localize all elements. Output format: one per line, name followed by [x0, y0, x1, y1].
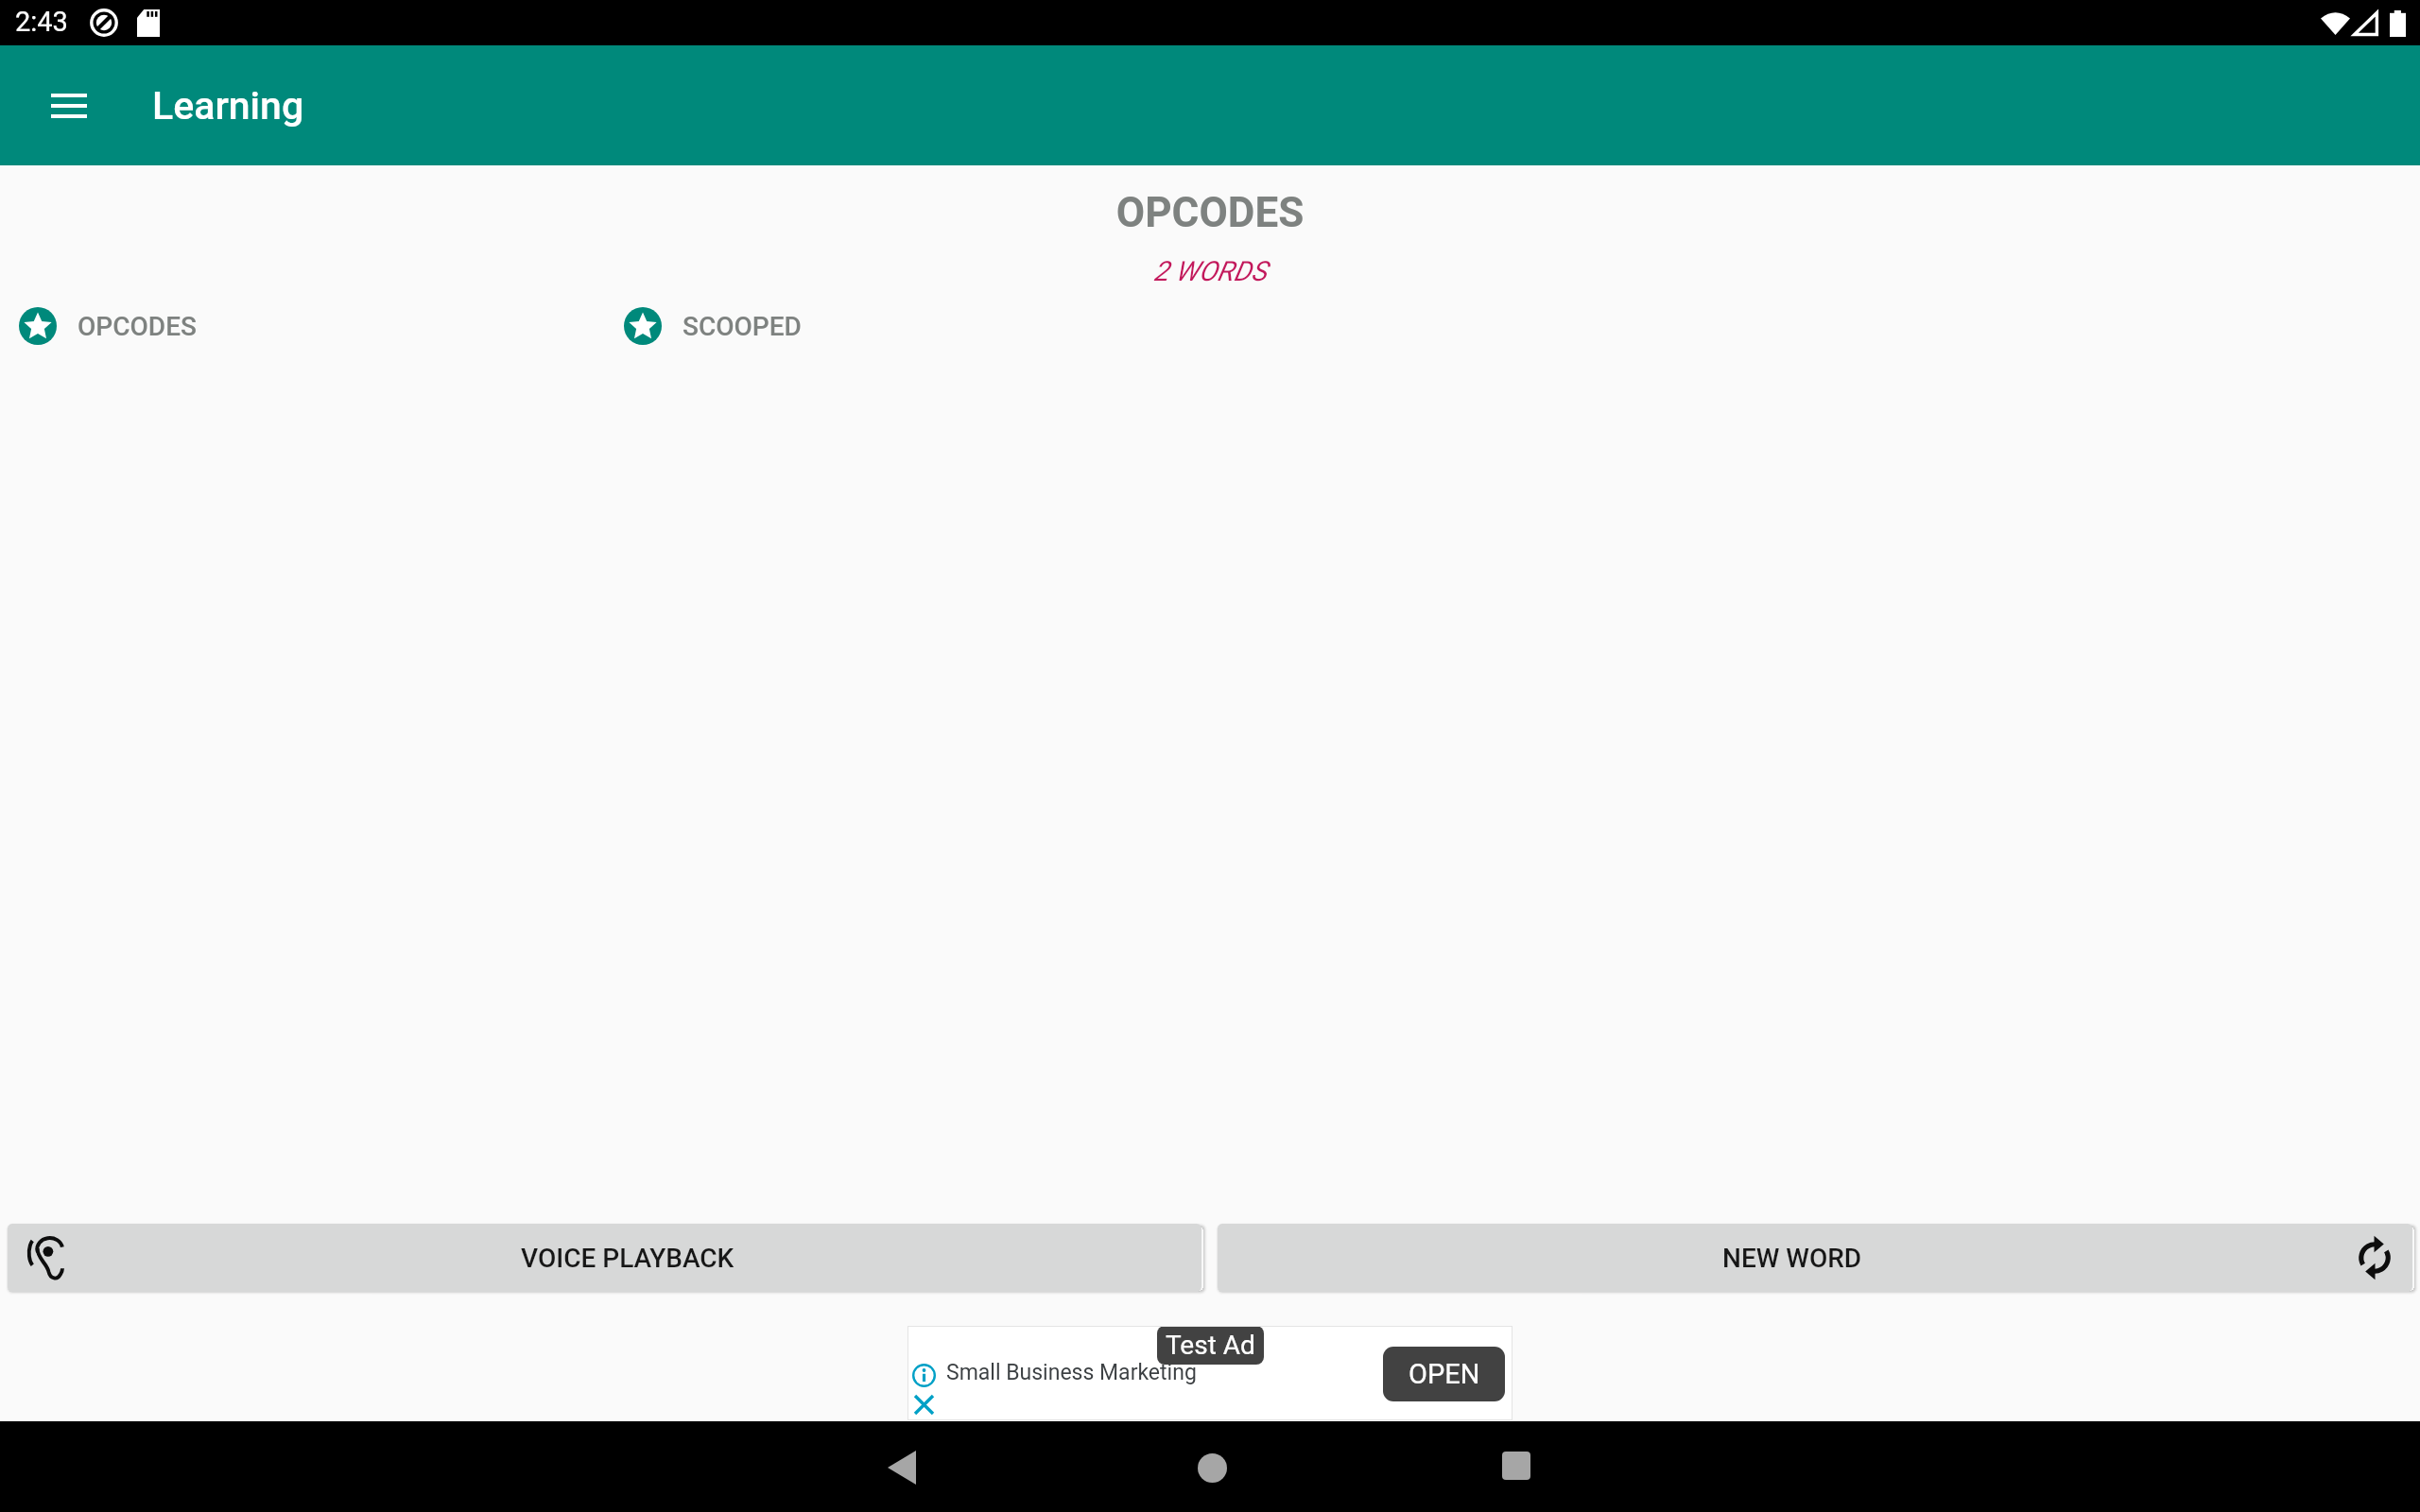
staticText: OPEN [1409, 1358, 1480, 1390]
button[interactable]: Recent apps [1480, 1430, 1552, 1502]
button[interactable]: NEW WORD [1218, 1224, 2412, 1292]
button[interactable]: SCOOPED [605, 300, 1210, 352]
button[interactable]: Back [866, 1432, 938, 1503]
button[interactable]: OPCODES [0, 300, 605, 352]
staticText: Test Ad [1166, 1330, 1255, 1361]
button[interactable]: Close ad [915, 1396, 933, 1414]
button[interactable]: Ad information [912, 1364, 936, 1387]
staticText: SCOOPED [683, 311, 802, 342]
button[interactable]: OPEN [1383, 1347, 1505, 1401]
staticText: NEW WORD [1722, 1243, 1862, 1274]
staticText: OPCODES [78, 311, 197, 342]
staticText: 2 WORDS [0, 255, 2420, 287]
staticText: Small Business Marketing [946, 1360, 1197, 1385]
button[interactable]: VOICE PLAYBACK [8, 1224, 1201, 1292]
staticText: 2:43 [15, 6, 68, 38]
button[interactable]: Home [1176, 1432, 1248, 1503]
staticText: Learning [152, 83, 304, 129]
button[interactable]: Ad information [907, 1326, 1512, 1420]
staticText: OPCODES [0, 188, 2420, 237]
staticText: VOICE PLAYBACK [521, 1243, 735, 1274]
button[interactable]: Open navigation drawer [35, 72, 103, 140]
